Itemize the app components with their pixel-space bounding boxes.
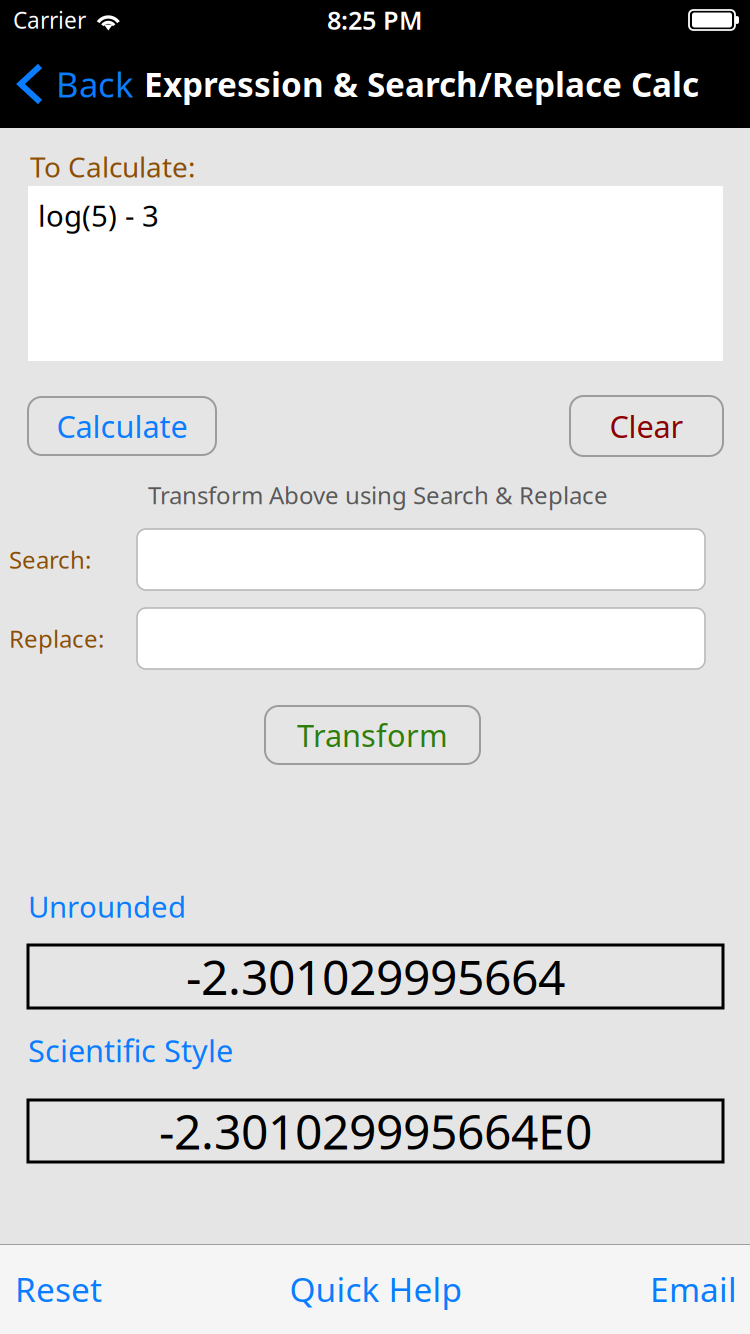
staticText: Scientific Style [28, 1030, 233, 1071]
staticText: Reset [15, 1267, 102, 1311]
staticText: Transform [297, 715, 448, 755]
staticText: Quick Help [289, 1267, 462, 1311]
staticText: Back [56, 61, 134, 107]
button[interactable]: Calculate [28, 397, 216, 455]
button[interactable]: Clear [570, 396, 723, 456]
staticText: Replace: [9, 623, 104, 654]
staticText: Email [650, 1267, 737, 1311]
staticText: Search: [9, 544, 91, 575]
button[interactable]: Reset [0, 1244, 122, 1334]
button[interactable]: Email [630, 1244, 750, 1334]
staticText: -2.301029995664 [186, 945, 565, 1008]
staticText: Transform Above using Search & Replace [148, 479, 608, 511]
staticText: To Calculate: [30, 148, 196, 185]
staticText: Unrounded [28, 887, 186, 926]
staticText: Clear [609, 406, 683, 446]
button[interactable]: log(5) - 3 [28, 186, 723, 361]
button[interactable]: Back [0, 40, 144, 128]
staticText: Calculate [56, 406, 187, 446]
staticText: log(5) - 3 [38, 196, 159, 235]
staticText: Carrier [13, 5, 86, 35]
button[interactable]: Quick Help [269, 1244, 482, 1334]
staticText: 8:25 PM [327, 3, 423, 37]
button[interactable]: Replace text field [137, 608, 705, 669]
staticText: Expression & Search/Replace Calc [144, 62, 699, 106]
button[interactable]: Search text field [137, 529, 705, 590]
staticText: -2.301029995664E0 [159, 1099, 592, 1163]
button[interactable]: Transform [265, 706, 480, 764]
